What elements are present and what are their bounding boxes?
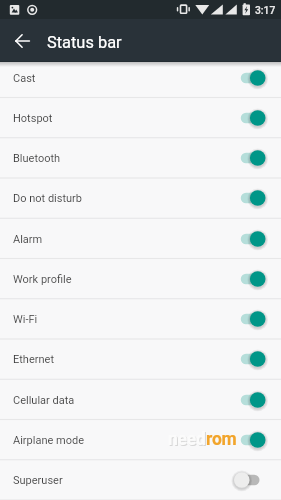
button[interactable]: Toggle on xyxy=(234,108,266,128)
staticText: 3:17 xyxy=(255,4,276,16)
staticText: Do not disturb xyxy=(13,192,83,205)
button[interactable]: Ethernet xyxy=(13,339,266,379)
staticText: need xyxy=(169,430,207,451)
button[interactable]: Bluetooth xyxy=(13,138,266,178)
button[interactable]: Airplane mode xyxy=(13,420,266,460)
staticText: need xyxy=(168,429,206,450)
button[interactable]: Toggle on xyxy=(234,430,266,450)
button[interactable]: Toggle on xyxy=(234,68,266,88)
button[interactable]: Cellular data xyxy=(13,380,266,420)
button[interactable]: Toggle on xyxy=(234,148,266,168)
button[interactable]: Superuser xyxy=(13,460,266,500)
staticText: rom xyxy=(206,429,237,450)
staticText: Work profile xyxy=(13,273,72,286)
button[interactable]: Toggle on xyxy=(234,269,266,289)
staticText: Hotspot xyxy=(13,112,53,125)
staticText: Cellular data xyxy=(13,394,75,407)
button[interactable]: Toggle on xyxy=(234,390,266,410)
staticText: Ethernet xyxy=(13,353,54,366)
button[interactable]: Do not disturb xyxy=(13,178,266,218)
button[interactable]: Toggle on xyxy=(234,188,266,208)
button[interactable]: Alarm xyxy=(13,219,266,259)
button[interactable]: Work profile xyxy=(13,259,266,299)
button[interactable]: Toggle on xyxy=(234,349,266,369)
staticText: Status bar xyxy=(47,33,122,52)
staticText: Alarm xyxy=(13,233,43,246)
button[interactable]: Back xyxy=(0,20,42,62)
button[interactable]: Cast xyxy=(13,58,266,98)
staticText: Wi-Fi xyxy=(13,313,38,326)
button[interactable]: Hotspot xyxy=(13,98,266,138)
staticText: Cast xyxy=(13,72,36,85)
staticText: Superuser xyxy=(13,474,63,487)
button[interactable]: Toggle off xyxy=(234,470,266,490)
button[interactable]: Toggle on xyxy=(234,309,266,329)
staticText: Bluetooth xyxy=(13,152,61,165)
button[interactable]: Toggle on xyxy=(234,229,266,249)
button[interactable]: Wi-Fi xyxy=(13,299,266,339)
staticText: Airplane mode xyxy=(13,434,85,447)
